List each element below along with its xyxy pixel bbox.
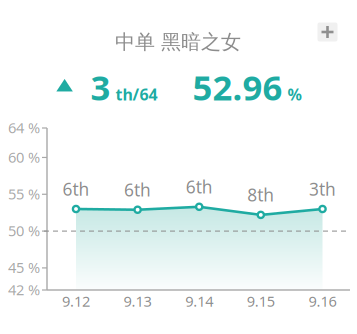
- staticText: 9.14: [185, 291, 213, 311]
- staticText: 42 %: [8, 280, 40, 299]
- staticText: 9.13: [124, 291, 152, 311]
- staticText: 6th: [124, 178, 151, 201]
- staticText: 55 %: [8, 184, 40, 203]
- staticText: 52.96: [192, 64, 282, 110]
- staticText: 9.12: [62, 291, 90, 311]
- staticText: 50 %: [8, 221, 40, 240]
- staticText: 8th: [247, 183, 274, 206]
- staticText: 60 %: [8, 147, 40, 167]
- staticText: 3th: [309, 177, 336, 200]
- staticText: 3: [90, 64, 110, 110]
- staticText: 6th: [186, 175, 213, 198]
- staticText: 64 %: [8, 118, 40, 137]
- staticText: 9.16: [308, 291, 336, 311]
- button[interactable]: Add: [317, 22, 337, 41]
- staticText: 45 %: [8, 258, 40, 277]
- staticText: 中单 黑暗之女: [115, 30, 241, 54]
- staticText: %: [287, 84, 301, 105]
- staticText: 6th: [62, 177, 89, 200]
- staticText: 9.15: [247, 291, 275, 311]
- staticText: th/64: [115, 84, 157, 105]
